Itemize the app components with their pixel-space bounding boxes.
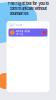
staticText: Anna Kim (15, 30, 29, 33)
staticText: The right tool for you to (7, 1, 48, 6)
staticText: calling (15, 33, 22, 35)
staticText: communicate without boundaries (9, 6, 46, 16)
staticText: Call now (8, 23, 21, 27)
